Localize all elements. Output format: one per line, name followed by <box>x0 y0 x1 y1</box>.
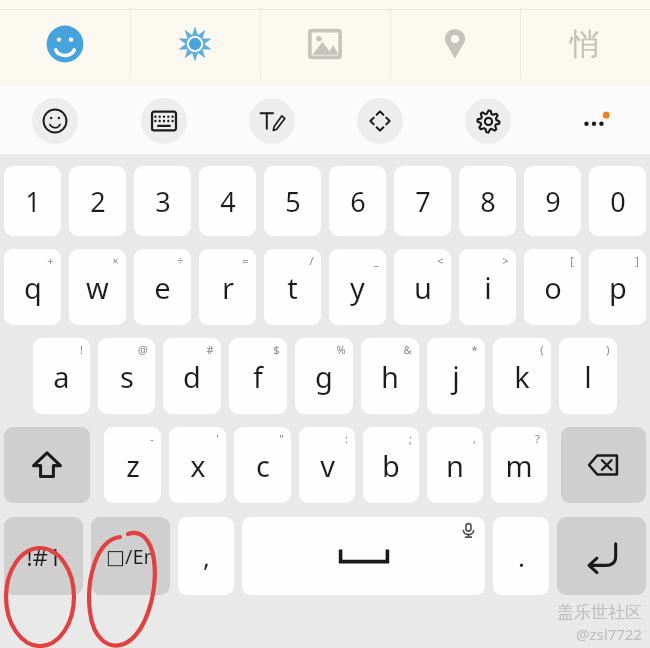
staticText: @zsl7722 <box>576 624 642 644</box>
button[interactable]: 2 <box>69 166 126 236</box>
button[interactable]: 9 <box>524 166 581 236</box>
staticText: 0 <box>610 183 626 220</box>
staticText: c <box>256 446 270 485</box>
button[interactable]: Space <box>242 517 485 595</box>
staticText: 6 <box>350 183 366 220</box>
button[interactable]: c <box>234 427 291 503</box>
button[interactable]: w <box>69 249 126 325</box>
button[interactable]: , <box>178 517 234 595</box>
button[interactable]: r <box>199 249 256 325</box>
button[interactable]: Location <box>390 0 520 87</box>
button[interactable]: y <box>329 249 386 325</box>
button[interactable]: □/En <box>91 517 170 595</box>
staticText: m <box>505 446 533 485</box>
staticText: q <box>24 268 42 307</box>
staticText: # <box>206 342 214 357</box>
staticText: + <box>47 253 54 268</box>
button[interactable]: t <box>264 249 321 325</box>
staticText: 8 <box>480 183 496 220</box>
staticText: < <box>437 253 444 268</box>
button[interactable]: !#1 <box>4 517 83 595</box>
staticText: n <box>446 446 464 485</box>
button[interactable]: f <box>229 338 287 414</box>
button[interactable]: s <box>98 338 155 414</box>
button[interactable]: k <box>493 338 551 414</box>
button[interactable]: b <box>363 427 419 503</box>
button[interactable]: x <box>169 427 226 503</box>
button[interactable]: z <box>104 427 161 503</box>
button[interactable]: . <box>493 517 549 595</box>
button[interactable]: Enter <box>557 517 646 595</box>
button[interactable]: Backspace <box>561 427 646 503</box>
staticText: 2 <box>90 183 106 220</box>
staticText: w <box>86 268 109 307</box>
button[interactable]: Image <box>260 0 390 87</box>
button[interactable]: o <box>524 249 581 325</box>
staticText: ) <box>606 342 610 357</box>
button[interactable]: Emoji <box>0 87 109 155</box>
button[interactable]: 6 <box>329 166 386 236</box>
staticText: 9 <box>545 183 561 220</box>
staticText: r <box>222 268 234 307</box>
button[interactable]: Keyboard <box>109 87 218 155</box>
staticText: y <box>350 268 365 307</box>
staticText: $ <box>273 342 280 357</box>
button[interactable]: m <box>491 427 547 503</box>
staticText: 悄 <box>570 25 600 63</box>
staticText: / <box>309 253 314 268</box>
staticText: ÷ <box>177 253 184 268</box>
button[interactable]: 5 <box>264 166 321 236</box>
button[interactable]: a <box>33 338 90 414</box>
button[interactable]: l <box>559 338 617 414</box>
button[interactable]: Settings <box>434 87 542 155</box>
button[interactable]: j <box>427 338 485 414</box>
button[interactable]: 0 <box>589 166 646 236</box>
staticText: d <box>183 357 201 396</box>
staticText: !#1 <box>26 540 62 573</box>
staticText: 1 <box>25 183 41 220</box>
staticText: @ <box>138 342 148 357</box>
button[interactable]: Handwriting <box>218 87 326 155</box>
staticText: b <box>382 446 400 485</box>
staticText: h <box>381 357 399 396</box>
staticText: z <box>126 446 140 485</box>
staticText: , <box>203 539 210 574</box>
button[interactable]: u <box>394 249 451 325</box>
staticText: t <box>287 268 298 307</box>
button[interactable]: Shift <box>4 427 90 503</box>
staticText: a <box>53 357 70 396</box>
button[interactable]: p <box>589 249 646 325</box>
staticText: 盖乐世社区 <box>557 602 642 623</box>
staticText: [ <box>570 253 574 268</box>
staticText: u <box>414 268 432 307</box>
button[interactable]: Emoji <box>0 0 130 87</box>
staticText: x <box>190 446 206 485</box>
staticText: □/En <box>106 543 156 570</box>
staticText: : <box>345 431 348 446</box>
button[interactable]: d <box>163 338 221 414</box>
button[interactable]: g <box>295 338 353 414</box>
button[interactable]: Move cursor <box>326 87 434 155</box>
staticText: & <box>403 342 412 357</box>
staticText: ( <box>540 342 544 357</box>
button[interactable]: 4 <box>199 166 256 236</box>
button[interactable]: v <box>299 427 355 503</box>
staticText: s <box>120 357 134 396</box>
button[interactable]: 3 <box>134 166 191 236</box>
button[interactable]: i <box>459 249 516 325</box>
staticText: _ <box>374 253 379 268</box>
button[interactable]: More <box>542 87 650 155</box>
button[interactable]: h <box>361 338 419 414</box>
button[interactable]: e <box>134 249 191 325</box>
button[interactable]: 8 <box>459 166 516 236</box>
button[interactable]: Secret <box>520 0 650 87</box>
staticText: , <box>473 431 476 446</box>
button[interactable]: n <box>427 427 483 503</box>
button[interactable]: 7 <box>394 166 451 236</box>
staticText: * <box>471 342 478 357</box>
button[interactable]: Sticker <box>130 0 260 87</box>
staticText: g <box>315 357 333 396</box>
button[interactable]: 1 <box>4 166 61 236</box>
button[interactable]: q <box>4 249 61 325</box>
staticText: i <box>484 268 492 307</box>
